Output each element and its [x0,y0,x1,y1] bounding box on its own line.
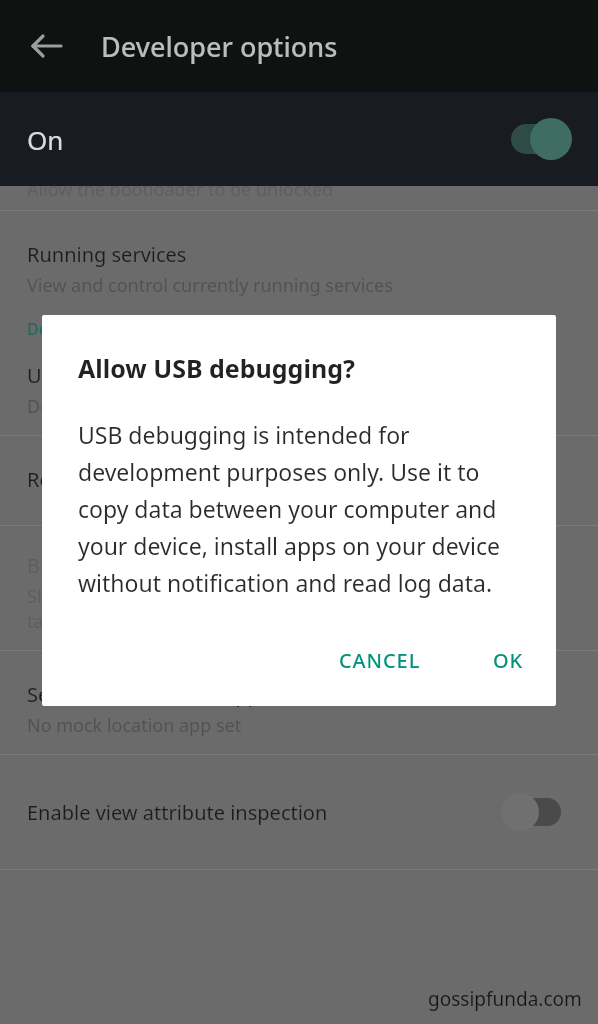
staticText: Enable view attribute inspection [27,799,328,826]
staticText: Debug mode when USB is connected [27,394,339,419]
button[interactable]: USB debugging [0,362,598,419]
staticText: Allow USB debugging? [78,351,355,385]
staticText: Allow the bootloader to be unlocked [27,177,334,201]
staticText: Show a button in the power menu for [27,584,344,609]
staticText: USB debugging is intended for developmen… [78,419,534,599]
button[interactable]: Toggle view attribute inspection [499,792,571,832]
staticText: Running services [27,241,187,268]
staticText: CANCEL [339,647,421,674]
staticText: Select mock location app [27,681,260,708]
button[interactable]: Revoke USB debugging authorizations [27,466,388,493]
staticText: On [27,122,64,157]
button[interactable]: CANCEL [325,635,435,686]
staticText: Bug report shortcut [27,552,213,579]
other: Developer options on [501,119,573,159]
button[interactable]: Back [21,20,73,72]
button[interactable]: OK [479,635,538,686]
staticText: No mock location app set [27,713,242,738]
staticText: OK [493,647,524,674]
button[interactable]: On [0,92,598,186]
staticText: Debugging [27,318,112,340]
staticText: View and control currently running servi… [27,273,393,298]
staticText: gossipfunda.com [428,986,582,1012]
button[interactable]: Running services [0,211,598,298]
button[interactable]: Select mock location app [0,651,598,738]
button[interactable]: Enable view attribute inspection [0,755,598,869]
staticText: Developer options [101,28,338,65]
staticText: taking a bug report [27,609,191,634]
staticText: USB debugging [27,362,174,389]
